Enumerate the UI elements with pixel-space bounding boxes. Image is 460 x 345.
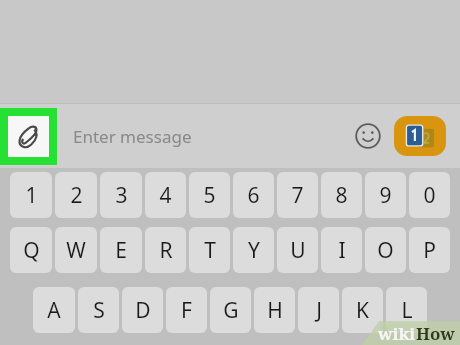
button[interactable]: 6 bbox=[233, 172, 274, 218]
staticText: 5 bbox=[203, 181, 216, 210]
staticText: Q bbox=[23, 236, 40, 265]
staticText: Enter message bbox=[73, 125, 346, 148]
staticText: R bbox=[159, 236, 173, 265]
button[interactable]: G bbox=[210, 287, 251, 333]
button[interactable]: P bbox=[409, 227, 450, 273]
staticText: 8 bbox=[335, 181, 348, 210]
staticText: 2 bbox=[70, 181, 83, 210]
staticText: L bbox=[401, 296, 413, 325]
button[interactable]: 4 bbox=[145, 172, 186, 218]
button[interactable]: 5 bbox=[189, 172, 230, 218]
staticText: P bbox=[423, 236, 436, 265]
staticText: How bbox=[416, 322, 455, 345]
staticText: O bbox=[377, 236, 394, 265]
button[interactable]: Q bbox=[10, 227, 52, 273]
button[interactable]: 8 bbox=[321, 172, 362, 218]
button[interactable]: 2 bbox=[55, 172, 97, 218]
staticText: I bbox=[338, 236, 346, 265]
staticText: T bbox=[204, 236, 216, 265]
staticText: W bbox=[66, 236, 86, 265]
button[interactable]: J bbox=[298, 287, 339, 333]
staticText: 1 bbox=[25, 181, 38, 210]
button[interactable]: U bbox=[277, 227, 318, 273]
staticText: A bbox=[47, 296, 61, 325]
staticText: U bbox=[290, 236, 306, 265]
button[interactable]: 1 bbox=[10, 172, 52, 218]
staticText: J bbox=[316, 296, 322, 325]
staticText: E bbox=[115, 236, 127, 265]
button[interactable]: Attach file bbox=[0, 108, 57, 165]
button[interactable]: A bbox=[33, 287, 75, 333]
button[interactable]: T bbox=[189, 227, 230, 273]
button[interactable]: L bbox=[386, 287, 427, 333]
staticText: 9 bbox=[379, 181, 392, 210]
button[interactable]: F bbox=[166, 287, 207, 333]
staticText: F bbox=[181, 296, 192, 325]
staticText: S bbox=[93, 296, 105, 325]
button[interactable]: H bbox=[254, 287, 295, 333]
button[interactable]: Select SIM card bbox=[394, 116, 446, 156]
button[interactable]: W bbox=[55, 227, 97, 273]
staticText: H bbox=[267, 296, 283, 325]
staticText: 4 bbox=[159, 181, 172, 210]
button[interactable]: S bbox=[78, 287, 119, 333]
button[interactable]: 0 bbox=[409, 172, 450, 218]
staticText: G bbox=[223, 296, 239, 325]
button[interactable]: E bbox=[100, 227, 142, 273]
staticText: 6 bbox=[247, 181, 260, 210]
staticText: 0 bbox=[423, 181, 436, 210]
button[interactable]: R bbox=[145, 227, 186, 273]
staticText: K bbox=[356, 296, 369, 325]
button[interactable]: I bbox=[321, 227, 362, 273]
button[interactable]: O bbox=[365, 227, 406, 273]
button[interactable]: 9 bbox=[365, 172, 406, 218]
button[interactable]: Insert emoji bbox=[346, 114, 390, 158]
staticText: 3 bbox=[115, 181, 128, 210]
button[interactable]: Y bbox=[233, 227, 274, 273]
button[interactable]: 7 bbox=[277, 172, 318, 218]
staticText: wiki bbox=[378, 322, 416, 345]
staticText: D bbox=[135, 296, 151, 325]
staticText: 7 bbox=[291, 181, 304, 210]
button[interactable]: K bbox=[342, 287, 383, 333]
button[interactable]: 3 bbox=[100, 172, 142, 218]
button[interactable]: D bbox=[122, 287, 163, 333]
staticText: Y bbox=[248, 236, 260, 265]
